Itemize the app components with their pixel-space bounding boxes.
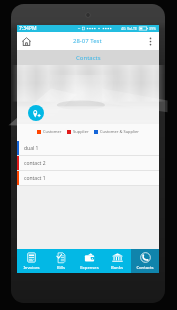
staticText: Expenses xyxy=(80,265,99,271)
staticText: Customer xyxy=(43,129,62,134)
button[interactable]: Banks xyxy=(103,249,131,273)
button[interactable]: dual 1 xyxy=(17,141,159,155)
staticText: Invoices xyxy=(23,265,40,271)
staticText: 4G xyxy=(121,26,126,31)
staticText: Supplier xyxy=(73,129,89,134)
button[interactable]: Bills xyxy=(46,249,75,273)
button[interactable]: Expenses xyxy=(75,249,103,273)
staticText: contact 1 xyxy=(24,175,46,182)
staticText: contact 2 xyxy=(24,160,46,167)
button[interactable]: Contacts xyxy=(131,249,159,273)
staticText: dual 1 xyxy=(24,145,39,152)
button[interactable]: Invoices xyxy=(17,249,46,273)
staticText: Bills xyxy=(57,265,65,271)
button[interactable]: Contacts xyxy=(17,50,159,65)
button[interactable]: More options xyxy=(141,32,159,50)
staticText: Contacts xyxy=(136,265,154,271)
button[interactable]: contact 1 xyxy=(17,171,159,185)
staticText: 7:34PM xyxy=(19,25,37,32)
staticText: 28-07 Test xyxy=(73,37,102,45)
staticText: Banks xyxy=(111,265,123,271)
staticText: Contacts xyxy=(76,54,101,62)
button[interactable]: Add contact xyxy=(28,105,44,121)
staticText: Customer & Supplier xyxy=(100,129,139,134)
staticText: VoLTE xyxy=(127,26,138,31)
button[interactable]: Home xyxy=(17,32,35,50)
button[interactable]: contact 2 xyxy=(17,156,159,170)
staticText: 39% xyxy=(149,26,157,31)
